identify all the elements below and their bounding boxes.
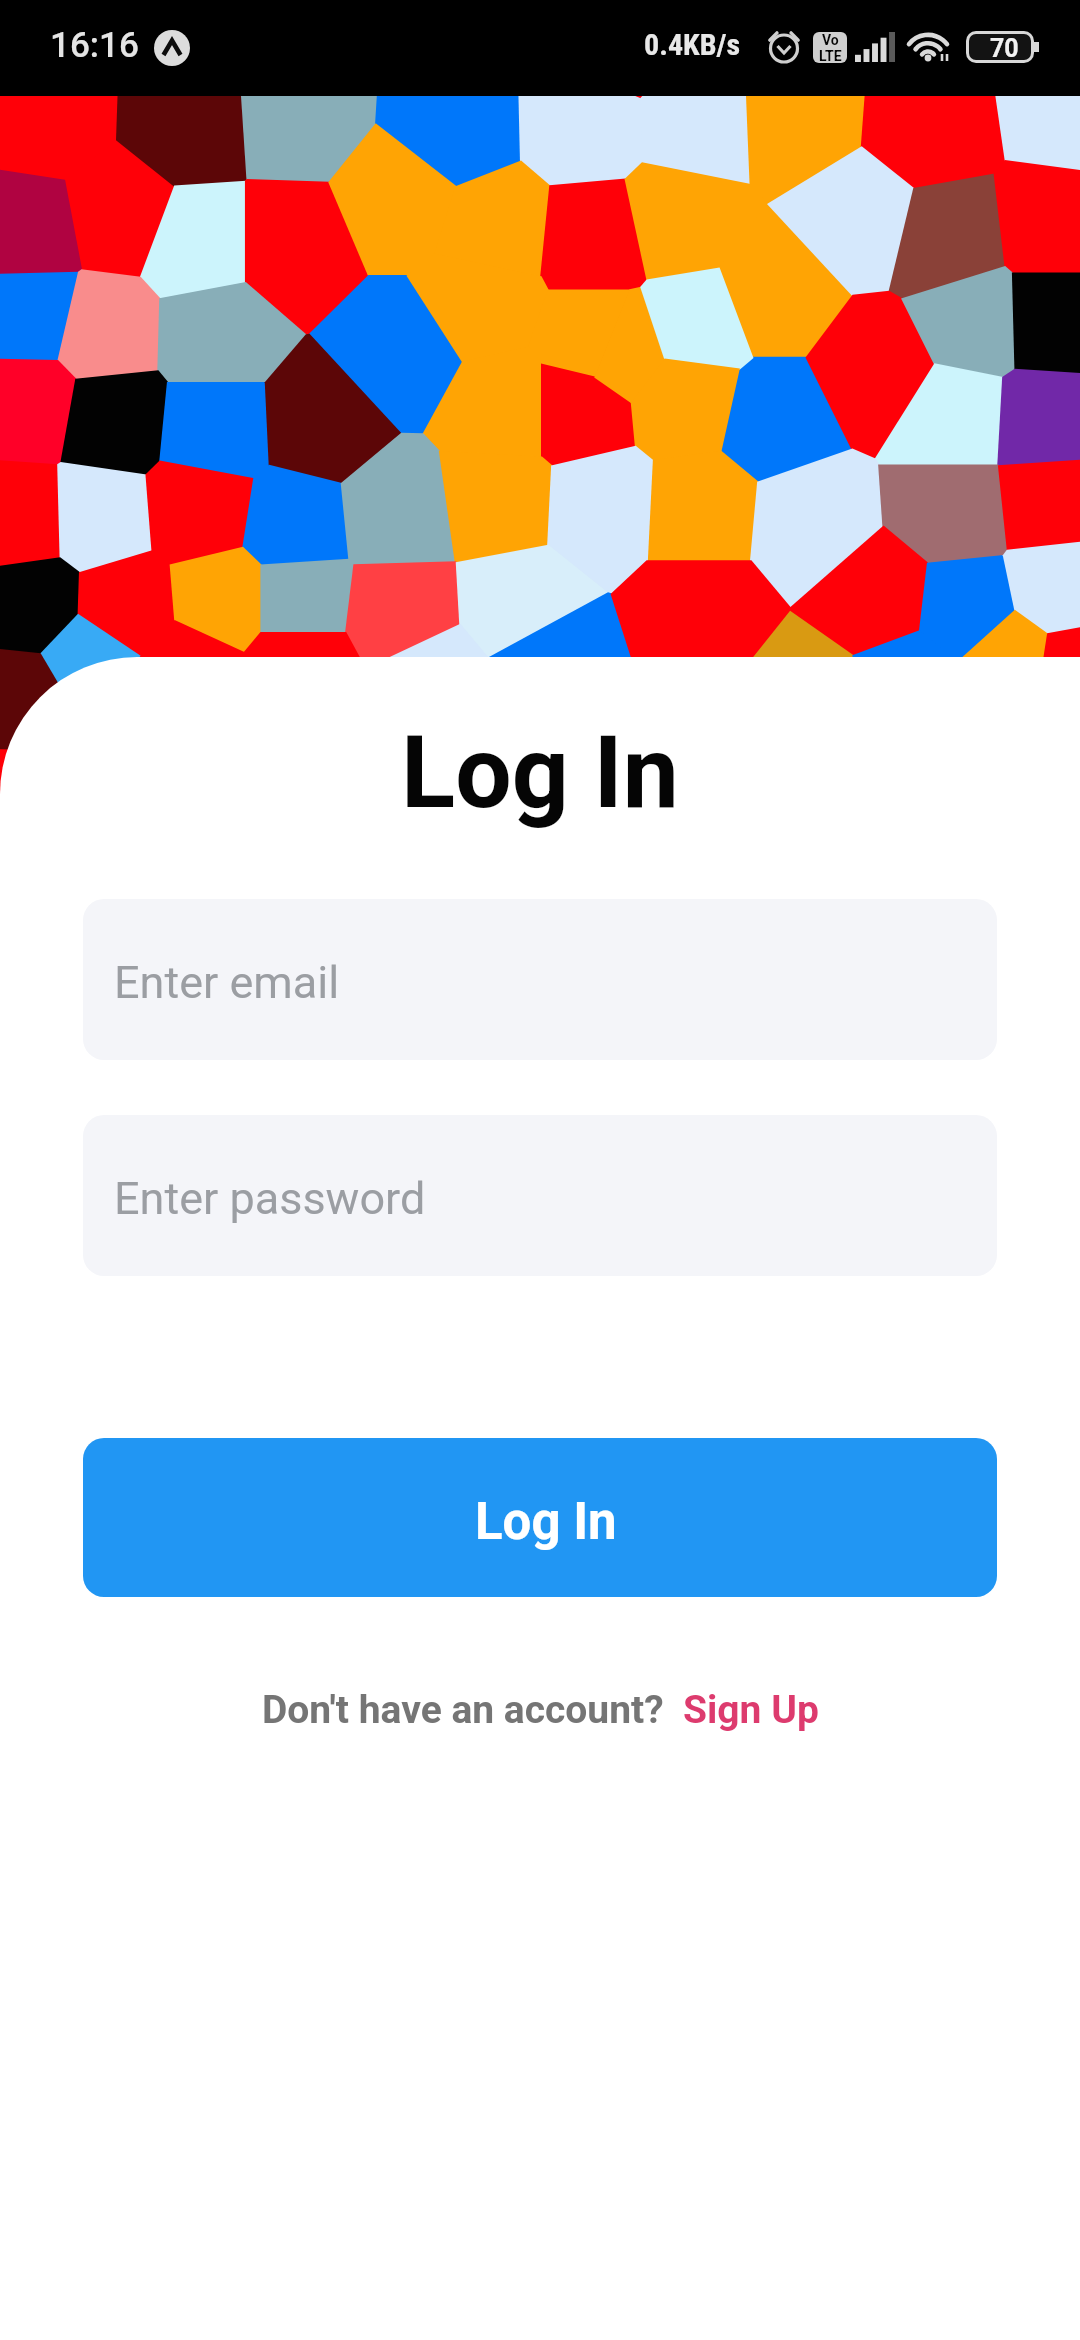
staticText: Don't have an account? bbox=[262, 1687, 664, 1733]
staticText: Enter email bbox=[114, 956, 340, 1009]
button[interactable]: Enter password bbox=[83, 1115, 997, 1276]
staticText: LTE bbox=[819, 48, 842, 63]
button[interactable]: Sign Up bbox=[683, 1687, 819, 1733]
button[interactable]: Log In bbox=[83, 1438, 997, 1597]
button[interactable]: Enter email bbox=[83, 899, 997, 1060]
staticText: Enter password bbox=[114, 1172, 426, 1225]
staticText: Sign Up bbox=[683, 1687, 819, 1733]
staticText: 0.4KB/s bbox=[644, 27, 741, 62]
staticText: 16:16 bbox=[50, 25, 139, 66]
staticText: Vo bbox=[822, 32, 839, 48]
staticText: Log In bbox=[0, 714, 1080, 831]
staticText: 70 bbox=[990, 34, 1019, 60]
staticText: Log In bbox=[475, 1492, 617, 1552]
